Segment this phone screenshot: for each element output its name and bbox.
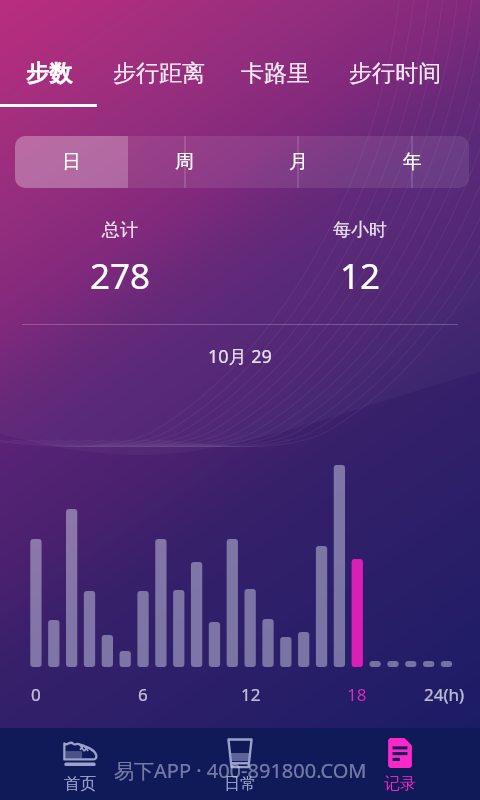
staticText: 易下APP · 400-891800.COM [114,757,367,784]
button[interactable]: 首页 [0,728,160,800]
staticText: 年 [403,150,422,174]
staticText: 首页 [64,774,96,794]
staticText: 日常 [224,774,256,794]
staticText: 6 [138,683,148,706]
staticText: 278 [90,252,151,300]
button[interactable]: 步数 [0,0,97,108]
button[interactable]: 年 [355,136,469,188]
button[interactable]: 记录 [320,728,480,800]
staticText: 总计 [102,219,138,242]
button[interactable]: 日 [15,136,128,188]
button[interactable]: 卡路里 [221,0,329,108]
staticText: 每小时 [333,219,387,242]
staticText: 24(h) [424,683,465,706]
staticText: 步行距离 [113,59,205,88]
staticText: 日 [62,150,81,174]
button[interactable]: 步行时间 [329,0,460,108]
button[interactable]: 步行距离 [97,0,221,108]
button[interactable]: 日常 [160,728,320,800]
button[interactable]: 月 [241,136,355,188]
staticText: 18 [347,683,367,706]
staticText: 月 [289,150,308,174]
staticText: 步数 [26,59,72,88]
staticText: 12 [340,252,381,300]
staticText: 周 [175,150,194,174]
staticText: 10月 29 [208,344,272,369]
staticText: 卡路里 [241,59,310,88]
staticText: 12 [241,683,261,706]
staticText: 步行时间 [349,59,441,88]
staticText: 记录 [384,774,416,794]
button[interactable]: 周 [128,136,241,188]
staticText: 0 [31,683,41,706]
